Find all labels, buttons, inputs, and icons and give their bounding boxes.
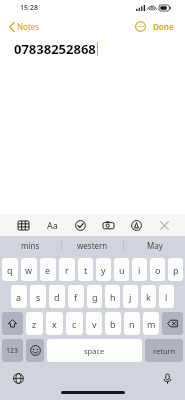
button[interactable]: i — [132, 258, 147, 281]
staticText: space — [84, 346, 105, 356]
button[interactable]: 123 — [2, 339, 23, 362]
staticText: p — [173, 264, 179, 276]
staticText: Done — [153, 21, 174, 32]
staticText: a — [16, 291, 22, 303]
button[interactable]: Emoji — [26, 339, 44, 362]
button[interactable]: f — [68, 285, 84, 308]
button[interactable]: Done — [150, 19, 177, 34]
staticText: return — [153, 346, 176, 356]
button[interactable]: May — [124, 236, 185, 255]
staticText: o — [155, 264, 161, 276]
staticText: j — [129, 291, 132, 303]
staticText: k — [146, 291, 151, 303]
button[interactable]: c — [66, 312, 83, 335]
button[interactable]: Camera — [97, 214, 119, 236]
button[interactable]: u — [114, 258, 129, 281]
staticText: s — [36, 291, 41, 303]
staticText: q — [7, 264, 13, 276]
button[interactable]: n — [124, 312, 140, 335]
staticText: z — [32, 318, 37, 330]
button[interactable]: k — [141, 285, 156, 308]
staticText: g — [92, 291, 98, 303]
staticText: 123 — [6, 346, 19, 356]
staticText: May — [147, 240, 163, 251]
staticText: y — [101, 264, 106, 276]
staticText: f — [74, 291, 78, 303]
staticText: 07838252868 — [14, 40, 96, 58]
button[interactable]: Close keyboard — [153, 214, 175, 236]
staticText: d — [54, 291, 60, 303]
staticText: t — [84, 264, 88, 276]
button[interactable]: space — [47, 339, 142, 362]
staticText: x — [52, 318, 57, 330]
staticText: e — [45, 264, 51, 276]
staticText: n — [129, 318, 135, 330]
staticText: m — [147, 318, 156, 330]
staticText: western — [77, 240, 108, 251]
button[interactable]: a — [11, 285, 27, 308]
button[interactable]: e — [40, 258, 56, 281]
button[interactable]: Dictation — [157, 368, 177, 388]
button[interactable]: More options — [132, 18, 148, 34]
button[interactable]: Aa — [41, 214, 63, 236]
button[interactable]: h — [105, 285, 120, 308]
staticText: r — [65, 264, 69, 276]
staticText: i — [138, 264, 141, 276]
staticText: v — [92, 318, 97, 330]
button[interactable]: l — [159, 285, 174, 308]
staticText: Notes — [17, 21, 40, 32]
button[interactable]: v — [86, 312, 102, 335]
staticText: l — [165, 291, 168, 303]
staticText: b — [110, 318, 116, 330]
button[interactable]: x — [46, 312, 63, 335]
button[interactable]: Notes — [6, 19, 43, 34]
button[interactable]: t — [78, 258, 93, 281]
staticText: Aa — [47, 219, 58, 231]
button[interactable]: p — [168, 258, 183, 281]
button[interactable]: Backspace — [162, 312, 183, 335]
button[interactable]: b — [105, 312, 121, 335]
staticText: u — [119, 264, 125, 276]
button[interactable]: Markup — [125, 214, 147, 236]
button[interactable]: o — [150, 258, 165, 281]
staticText: c — [72, 318, 77, 330]
button[interactable]: d — [49, 285, 65, 308]
button[interactable]: Table — [12, 214, 34, 236]
button[interactable]: m — [143, 312, 159, 335]
staticText: mins — [21, 240, 40, 251]
button[interactable]: western — [62, 236, 123, 255]
button[interactable]: mins — [0, 236, 61, 255]
button[interactable]: s — [30, 285, 46, 308]
button[interactable]: return — [145, 339, 183, 362]
button[interactable]: q — [2, 258, 18, 281]
staticText: h — [110, 291, 116, 303]
staticText: w — [25, 264, 33, 276]
button[interactable]: r — [59, 258, 75, 281]
button[interactable]: Switch keyboard — [8, 368, 28, 388]
button[interactable]: y — [96, 258, 111, 281]
button[interactable]: g — [87, 285, 102, 308]
button[interactable]: j — [123, 285, 138, 308]
button[interactable]: z — [26, 312, 43, 335]
button[interactable]: w — [21, 258, 37, 281]
button[interactable]: Shift — [2, 312, 23, 335]
button[interactable]: Checklist — [69, 214, 91, 236]
staticText: 15:28 — [20, 3, 38, 13]
button[interactable]: 07838252868 — [0, 36, 185, 214]
